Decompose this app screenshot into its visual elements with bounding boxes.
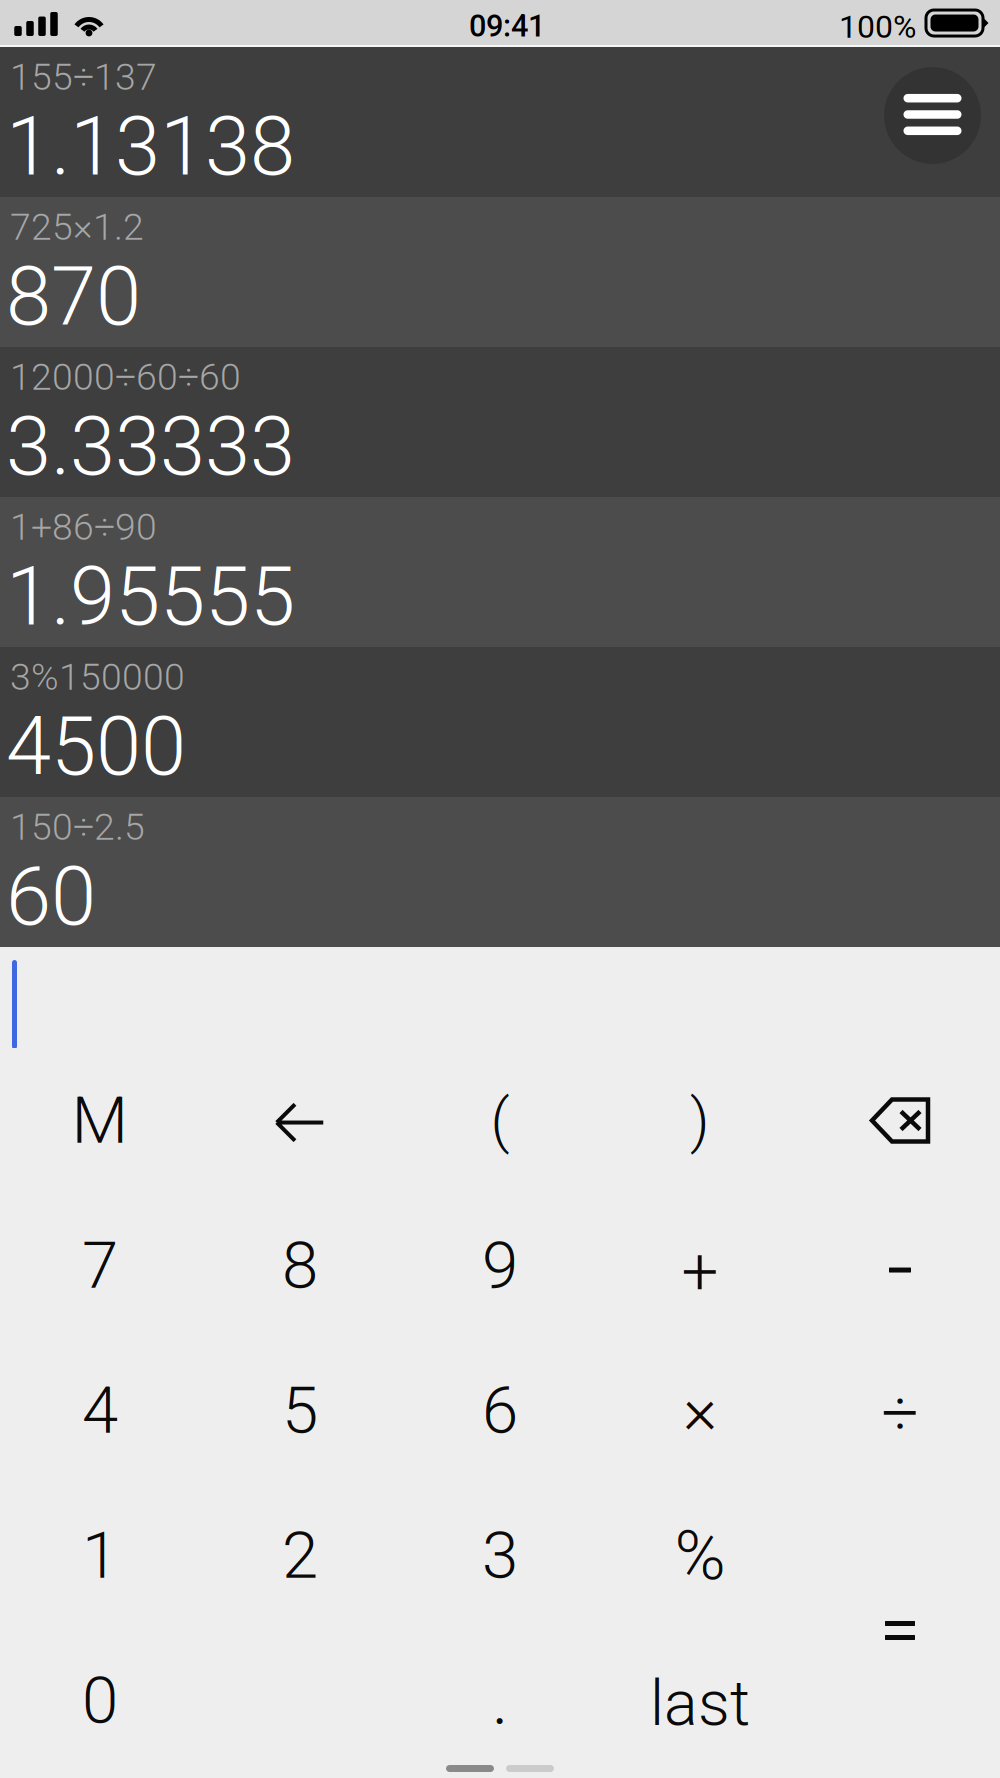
staticText: 150÷2.5 [10,805,145,849]
staticText: 1.13138 [6,99,295,194]
button[interactable]: Backspace arrow [200,1048,400,1193]
button[interactable]: + [600,1193,800,1338]
button[interactable]: 8 [200,1193,400,1338]
staticText: 8 [282,1227,318,1304]
button[interactable]: ÷ [800,1338,1000,1483]
staticText: last [650,1667,750,1740]
button[interactable]: 3 [400,1483,600,1628]
button[interactable]: 150÷2.5 [0,797,1000,947]
button[interactable]: 6 [400,1338,600,1483]
button[interactable]: 12000÷60÷60 [0,347,1000,497]
staticText: ( [490,1085,509,1156]
staticText: 1 [82,1517,118,1594]
button[interactable]: ( [400,1048,600,1193]
staticText: 3%150000 [10,655,185,699]
staticText: 4 [82,1372,118,1449]
button[interactable]: % [600,1483,800,1628]
staticText: 0 [82,1662,118,1739]
button[interactable]: 9 [400,1193,600,1338]
button[interactable]: 725×1.2 [0,197,1000,347]
staticText: 60 [6,849,96,944]
button[interactable]: Equals [800,1483,1000,1773]
staticText: ÷ [881,1375,918,1452]
button[interactable]: 0 [0,1628,200,1773]
button[interactable]: last [600,1628,800,1773]
staticText: × [683,1372,717,1449]
button[interactable]: ) [600,1048,800,1193]
staticText: 3.33333 [6,399,295,494]
staticText: 2 [282,1517,318,1594]
staticText: 3 [482,1517,518,1594]
button[interactable]: 7 [0,1193,200,1338]
button[interactable]: . [400,1628,600,1773]
staticText: 1+86÷90 [10,505,157,549]
staticText: 100% [839,8,916,45]
button[interactable]: 5 [200,1338,400,1483]
button[interactable]: 3%150000 [0,647,1000,797]
button[interactable]: 2 [200,1483,400,1628]
button[interactable]: Delete [800,1048,1000,1193]
button[interactable]: 1+86÷90 [0,497,1000,647]
staticText: 7 [82,1227,118,1304]
button[interactable]: 4 [0,1338,200,1483]
staticText: ) [690,1085,710,1156]
button[interactable]: Menu [884,67,981,164]
staticText: + [681,1233,718,1310]
staticText: 4500 [6,699,186,794]
button[interactable]: × [600,1338,800,1483]
staticText: 1.95555 [6,549,295,644]
staticText: . [491,1657,508,1742]
staticText: 155÷137 [10,55,157,99]
staticText: 09:41 [469,8,545,44]
staticText: M [71,1082,128,1159]
button[interactable]: M [0,1048,200,1193]
staticText: 725×1.2 [10,205,144,249]
button[interactable]: 1 [0,1483,200,1628]
staticText: 6 [482,1372,518,1449]
button[interactable]: 155÷137 [0,47,1000,197]
staticText: % [674,1515,725,1596]
staticText: 12000÷60÷60 [10,355,241,399]
staticText: 9 [482,1227,518,1304]
button[interactable]: Minus [800,1193,1000,1338]
staticText: 5 [282,1372,318,1449]
staticText: 870 [6,249,141,344]
